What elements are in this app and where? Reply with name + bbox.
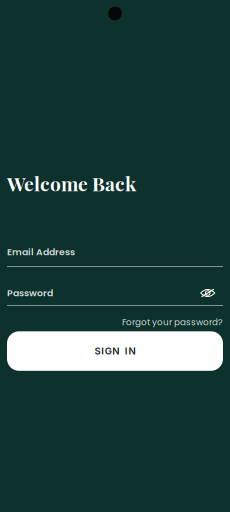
staticText: Welcome Back bbox=[7, 170, 136, 196]
staticText: Email Address bbox=[7, 245, 75, 259]
button[interactable]: SIGN IN bbox=[7, 331, 223, 371]
staticText: Forgot your password? bbox=[122, 316, 223, 328]
button[interactable]: Show password bbox=[200, 288, 223, 298]
button[interactable]: Forgot your password? bbox=[122, 316, 223, 328]
staticText: SIGN IN bbox=[95, 345, 135, 357]
staticText: Password bbox=[7, 286, 53, 300]
